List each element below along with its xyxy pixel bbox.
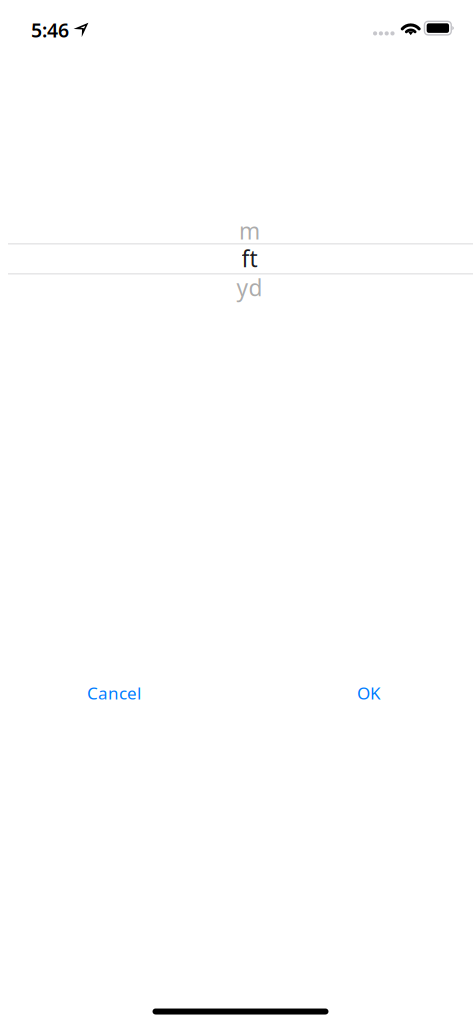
staticText: m (239, 215, 260, 245)
staticText: OK (357, 681, 381, 705)
staticText: 5:46 (31, 17, 69, 43)
button[interactable]: OK (341, 671, 397, 715)
button[interactable]: yd (26, 272, 473, 302)
staticText: Cancel (87, 681, 141, 705)
button[interactable]: ft (26, 243, 473, 273)
button[interactable]: Cancel (72, 671, 156, 715)
staticText: yd (236, 272, 262, 302)
staticText: ft (241, 243, 257, 273)
button[interactable]: m (26, 215, 473, 245)
